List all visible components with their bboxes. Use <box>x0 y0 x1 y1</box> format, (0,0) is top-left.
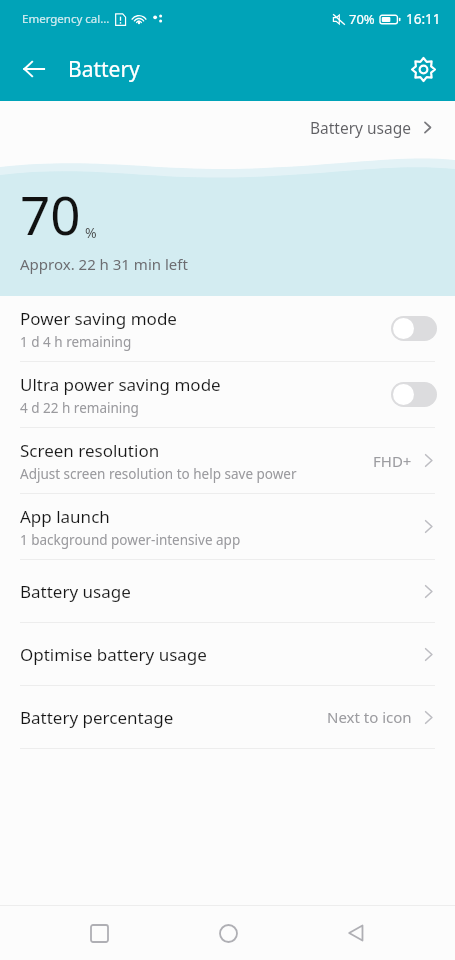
button[interactable]: Power saving mode <box>0 296 455 361</box>
staticText: Next to icon <box>327 707 412 727</box>
staticText: 4 d 22 h remaining <box>20 399 139 417</box>
button[interactable]: Back <box>10 45 58 93</box>
staticText: Battery <box>68 55 140 84</box>
staticText: Battery usage <box>310 117 412 138</box>
staticText: Screen resolution <box>20 439 160 462</box>
staticText: Power saving mode <box>20 307 177 330</box>
button[interactable]: Ultra power saving mode <box>391 382 437 407</box>
staticText: 1 background power-intensive app <box>20 531 241 549</box>
button[interactable]: Back <box>327 906 385 960</box>
button[interactable]: Battery percentage <box>0 686 455 748</box>
staticText: Optimise battery usage <box>20 643 207 666</box>
staticText: Battery percentage <box>20 706 174 729</box>
staticText: 70 <box>20 178 81 250</box>
button[interactable]: Recents <box>70 906 128 960</box>
staticText: Battery usage <box>20 580 131 603</box>
staticText: Emergency cal… <box>22 11 110 27</box>
staticText: 1 d 4 h remaining <box>20 333 132 351</box>
staticText: Adjust screen resolution to help save po… <box>20 465 297 483</box>
button[interactable]: Power saving mode <box>391 316 437 341</box>
staticText: Approx. 22 h 31 min left <box>20 254 188 274</box>
button[interactable]: Optimise battery usage <box>0 623 455 685</box>
button[interactable]: Screen resolution <box>0 428 455 493</box>
button[interactable]: Ultra power saving mode <box>0 362 455 427</box>
staticText: Ultra power saving mode <box>20 373 221 396</box>
button[interactable]: App launch <box>0 494 455 559</box>
button[interactable]: Battery usage <box>304 111 441 144</box>
button[interactable]: Settings <box>399 45 447 93</box>
staticText: App launch <box>20 505 110 528</box>
staticText: 16:11 <box>406 10 441 28</box>
button[interactable]: Battery usage <box>0 560 455 622</box>
button[interactable]: Home <box>199 906 257 960</box>
staticText: % <box>85 223 97 242</box>
staticText: FHD+ <box>373 451 412 471</box>
staticText: 70% <box>349 10 375 28</box>
